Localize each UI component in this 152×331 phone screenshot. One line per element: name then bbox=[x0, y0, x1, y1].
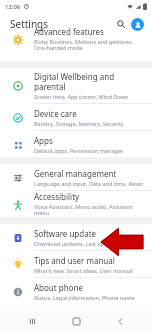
staticText: Accessibility bbox=[34, 191, 80, 202]
staticText: What's new, Smart ideas, User manual bbox=[34, 267, 133, 274]
button[interactable]: General management bbox=[0, 164, 152, 190]
staticText: Device care bbox=[34, 108, 77, 119]
staticText: Apps bbox=[34, 135, 53, 146]
staticText: Status, Legal information, Phone name bbox=[34, 294, 135, 301]
staticText: 12:06 bbox=[5, 3, 21, 11]
button[interactable]: Software update bbox=[0, 224, 152, 250]
staticText: Tips and user manual bbox=[34, 255, 115, 266]
staticText: Battery, Storage, Memory, Security bbox=[34, 120, 124, 127]
staticText: Screen time, App timers, Wind Down bbox=[34, 93, 129, 100]
button[interactable]: About phone bbox=[0, 278, 152, 304]
button[interactable]: Recents bbox=[20, 311, 44, 331]
button[interactable]: Advanced features bbox=[0, 26, 152, 52]
button[interactable]: Advanced features bbox=[0, 35, 152, 61]
button[interactable]: Apps bbox=[0, 131, 152, 157]
button[interactable]: Home bbox=[64, 311, 88, 331]
button[interactable]: Accessibility bbox=[0, 191, 152, 217]
staticText: Digital Wellbeing and parental controls bbox=[34, 71, 144, 92]
button[interactable]: Back bbox=[108, 311, 132, 331]
staticText: Download updates, Last update bbox=[34, 240, 116, 247]
button[interactable]: Digital Wellbeing and parental controls bbox=[0, 68, 152, 103]
staticText: Settings bbox=[10, 17, 49, 31]
button[interactable]: Account bbox=[131, 18, 144, 31]
staticText: Software update bbox=[34, 228, 97, 239]
button[interactable]: Tips and user manual bbox=[0, 251, 152, 277]
staticText: General management bbox=[34, 168, 117, 179]
staticText: Voice Assistant, Mono audio, Assistant m… bbox=[34, 203, 144, 217]
staticText: Language and input, Date and time, Reset bbox=[34, 180, 143, 187]
button[interactable]: Search bbox=[114, 17, 128, 31]
staticText: Advanced features bbox=[34, 26, 104, 37]
staticText: Bixby Routines, Motions and gestures, On… bbox=[34, 38, 133, 52]
staticText: Default apps, Permission manager bbox=[34, 147, 124, 154]
button[interactable]: Device care bbox=[0, 104, 152, 130]
staticText: About phone bbox=[34, 282, 83, 293]
